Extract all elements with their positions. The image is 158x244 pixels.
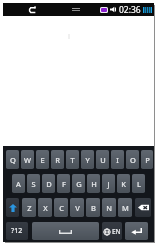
button[interactable]: G	[72, 174, 85, 193]
button[interactable]: V	[70, 198, 84, 217]
staticText: N	[106, 203, 112, 213]
staticText: D	[46, 179, 52, 189]
staticText: X	[43, 203, 48, 213]
button[interactable]: Y	[81, 150, 94, 169]
button[interactable]: T	[66, 150, 79, 169]
button[interactable]: Enter	[125, 222, 148, 240]
button[interactable]: X	[38, 198, 52, 217]
button[interactable]: J	[102, 174, 115, 193]
button[interactable]: Z	[22, 198, 36, 217]
button[interactable]: A	[12, 174, 25, 193]
staticText: V	[75, 203, 80, 213]
staticText: J	[107, 179, 110, 189]
staticText: Y	[85, 155, 90, 165]
staticText: F	[62, 179, 66, 189]
staticText: W	[24, 155, 31, 165]
button[interactable]: M	[118, 198, 132, 217]
button[interactable]: C	[54, 198, 68, 217]
staticText: G	[76, 179, 82, 189]
staticText: H	[91, 179, 97, 189]
staticText: ?12	[11, 226, 23, 236]
button[interactable]: Q	[6, 150, 19, 169]
staticText: C	[59, 203, 64, 213]
staticText: L	[137, 179, 141, 189]
button[interactable]: D	[42, 174, 55, 193]
button[interactable]: K	[117, 174, 130, 193]
button[interactable]: N	[102, 198, 116, 217]
staticText: S	[31, 179, 36, 189]
button[interactable]: O	[126, 150, 139, 169]
button[interactable]: Space	[32, 222, 99, 240]
button[interactable]: F	[57, 174, 70, 193]
staticText: E	[40, 155, 45, 165]
button[interactable]: Backspace	[135, 198, 151, 217]
staticText: B	[91, 203, 96, 213]
staticText: Z	[27, 203, 32, 213]
staticText: EN	[112, 227, 121, 236]
button[interactable]: S	[27, 174, 40, 193]
button[interactable]: U	[96, 150, 109, 169]
staticText: 02:36	[119, 4, 141, 16]
staticText: P	[145, 155, 150, 165]
button[interactable]: H	[87, 174, 100, 193]
button[interactable]: B	[86, 198, 100, 217]
button[interactable]: Change keyboard language	[102, 222, 122, 240]
button[interactable]: L	[132, 174, 145, 193]
button[interactable]: E	[36, 150, 49, 169]
button[interactable]: P	[141, 150, 153, 169]
staticText: M	[122, 203, 129, 213]
staticText: R	[55, 155, 60, 165]
staticText: I	[116, 155, 119, 165]
staticText: A	[16, 179, 21, 189]
button[interactable]: R	[51, 150, 64, 169]
button[interactable]: ?12	[6, 222, 28, 240]
staticText: O	[130, 155, 136, 165]
staticText: T	[70, 155, 75, 165]
button[interactable]: I	[111, 150, 124, 169]
button[interactable]: Shift	[6, 198, 19, 217]
staticText: U	[100, 155, 106, 165]
button[interactable]: W	[21, 150, 34, 169]
staticText: Q	[10, 155, 16, 165]
staticText: K	[121, 179, 126, 189]
